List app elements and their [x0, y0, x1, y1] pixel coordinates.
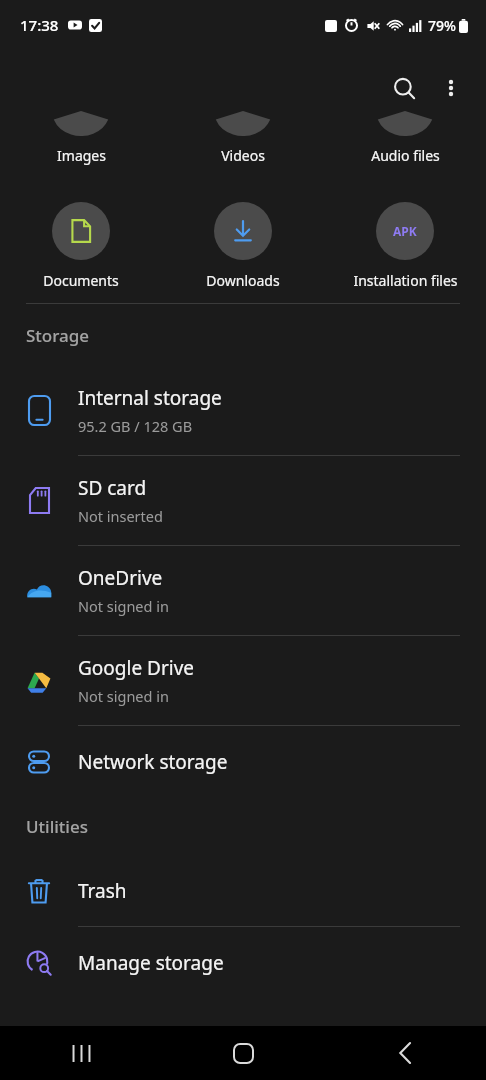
button[interactable]: SD card — [0, 456, 486, 545]
staticText: Utilities — [26, 815, 88, 838]
staticText: Not signed in — [78, 686, 169, 706]
button[interactable]: APK — [324, 202, 486, 290]
staticText: Storage — [26, 324, 90, 347]
staticText: Audio files — [371, 146, 440, 165]
staticText: Manage storage — [78, 950, 224, 976]
button[interactable]: Videos — [162, 126, 324, 165]
button[interactable]: More options — [430, 67, 472, 109]
staticText: Internal storage — [78, 385, 222, 411]
staticText: SD card — [78, 475, 147, 501]
button[interactable]: Back — [324, 1026, 486, 1080]
staticText: Documents — [43, 271, 119, 290]
staticText: Videos — [221, 146, 265, 165]
staticText: Not inserted — [78, 506, 163, 526]
button[interactable]: Audio files — [324, 126, 486, 165]
staticText: OneDrive — [78, 565, 163, 591]
button[interactable]: Home — [162, 1026, 324, 1080]
staticText: Trash — [78, 878, 127, 904]
button[interactable]: Internal storage — [0, 366, 486, 455]
button[interactable]: Recents — [0, 1026, 162, 1080]
button[interactable]: Trash — [0, 855, 486, 926]
button[interactable]: Downloads — [162, 202, 324, 290]
staticText: APK — [393, 223, 417, 239]
button[interactable]: OneDrive — [0, 546, 486, 635]
staticText: Installation files — [353, 271, 458, 290]
button[interactable]: Images — [0, 126, 162, 165]
staticText: Images — [57, 146, 106, 165]
button[interactable]: Manage storage — [0, 927, 486, 998]
staticText: Google Drive — [78, 655, 195, 681]
staticText: 95.2 GB / 128 GB — [78, 416, 193, 436]
button[interactable]: Search — [382, 66, 426, 110]
staticText: Not signed in — [78, 596, 169, 616]
staticText: Downloads — [206, 271, 280, 290]
staticText: 17:38 — [20, 15, 59, 35]
button[interactable]: Documents — [0, 202, 162, 290]
button[interactable]: Google Drive — [0, 636, 486, 725]
staticText: 79% — [428, 16, 456, 35]
staticText: Network storage — [78, 749, 228, 775]
button[interactable]: Network storage — [0, 726, 486, 797]
